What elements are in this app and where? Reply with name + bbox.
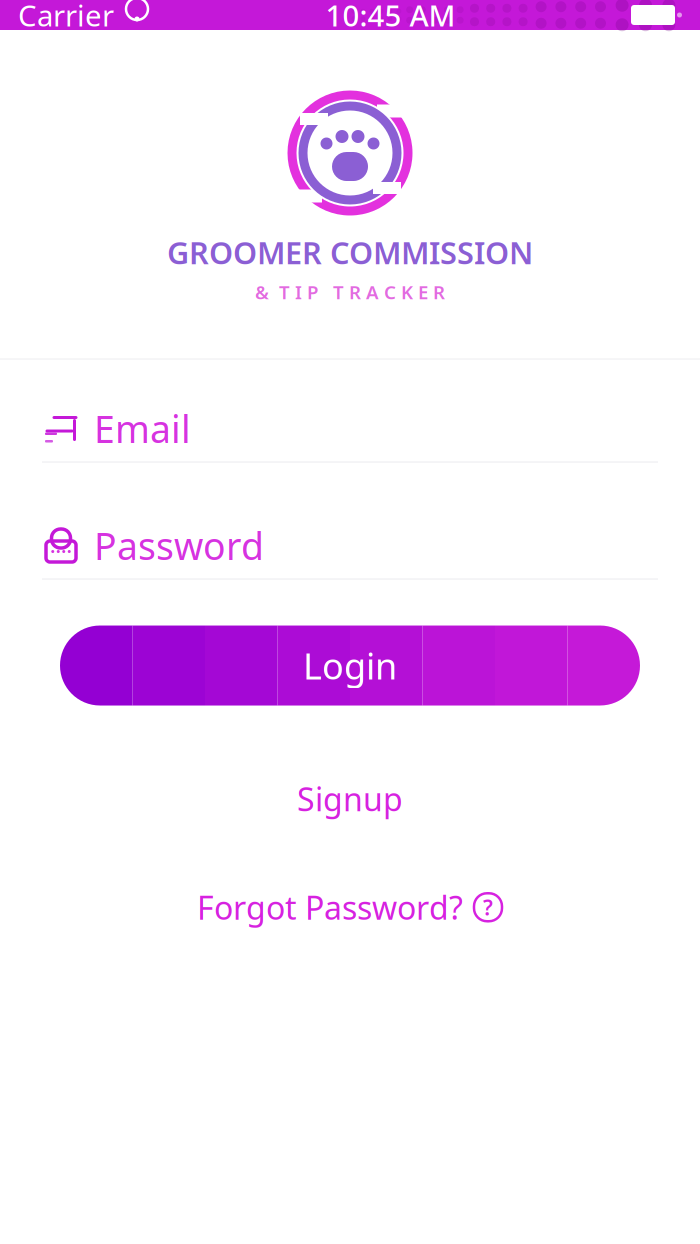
button[interactable]: Signup (267, 765, 433, 832)
button[interactable]: Password (0, 524, 700, 579)
staticText: 10:45 AM (325, 0, 455, 34)
button[interactable]: Login (0, 625, 700, 705)
button[interactable]: Forgot Password? (177, 876, 523, 938)
staticText: Carrier (18, 0, 114, 34)
staticText: GROOMER COMMISSION (167, 232, 533, 273)
button[interactable]: Email (0, 407, 700, 462)
staticText: ? (483, 893, 493, 921)
staticText: Signup (297, 777, 403, 820)
staticText: Email (94, 404, 191, 453)
staticText: Forgot Password? (197, 886, 463, 928)
staticText: Login (303, 642, 397, 689)
staticText: Password (94, 521, 264, 570)
staticText: & T I P T R A C K E R (255, 280, 445, 304)
